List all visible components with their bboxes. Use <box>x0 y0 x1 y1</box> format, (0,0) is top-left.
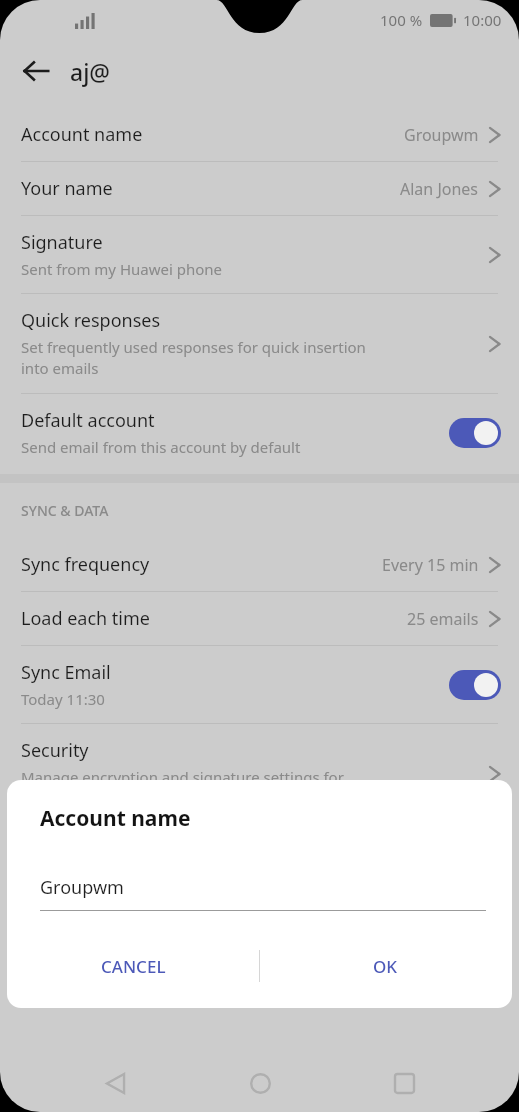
staticText: Groupwm <box>404 124 479 146</box>
button[interactable]: Toggle Default account <box>449 418 501 448</box>
staticText: Your name <box>21 176 113 201</box>
staticText: Set frequently used responses for quick … <box>21 337 366 379</box>
staticText: Sent from my Huawei phone <box>21 259 223 279</box>
staticText: aj@ <box>70 56 111 87</box>
staticText: Sync Email <box>21 660 111 685</box>
staticText: Security <box>21 738 89 763</box>
button[interactable]: Sync frequency <box>0 538 519 591</box>
staticText: Signature <box>21 230 103 255</box>
staticText: Manage encryption and signature settings… <box>21 767 344 809</box>
button[interactable]: Back <box>86 1054 144 1112</box>
button[interactable]: Sync Email <box>0 646 519 723</box>
staticText: 100 % <box>380 10 423 30</box>
button[interactable]: Recents <box>375 1054 433 1112</box>
button[interactable]: Quick responses <box>0 294 519 393</box>
button[interactable]: Signature <box>0 216 519 293</box>
button[interactable]: OK <box>259 934 512 998</box>
staticText: Account name <box>40 804 191 833</box>
button[interactable]: Default account <box>0 394 519 471</box>
staticText: Today 11:30 <box>21 689 105 709</box>
staticText: 25 emails <box>407 608 479 630</box>
staticText: Default account <box>21 408 155 433</box>
staticText: Groupwm <box>40 875 124 900</box>
staticText: Send email from this account by default <box>21 437 301 457</box>
staticText: Load each time <box>21 606 150 631</box>
staticText: Every 15 min <box>382 554 479 576</box>
staticText: Alan Jones <box>400 178 479 200</box>
button[interactable]: Account name <box>0 108 519 161</box>
staticText: Quick responses <box>21 308 161 333</box>
button[interactable]: Load each time <box>0 592 519 645</box>
staticText: 10:00 <box>463 10 502 30</box>
staticText: CANCEL <box>101 955 166 978</box>
button[interactable]: Toggle Sync Email <box>449 670 501 700</box>
button[interactable]: Home <box>231 1054 289 1112</box>
staticText: Account name <box>21 122 143 147</box>
button[interactable]: Your name <box>0 162 519 215</box>
button[interactable]: CANCEL <box>7 934 259 998</box>
button[interactable]: Back <box>10 45 62 97</box>
button[interactable]: Security <box>0 724 519 823</box>
staticText: OK <box>373 955 398 978</box>
staticText: SYNC & DATA <box>21 501 109 520</box>
staticText: Sync frequency <box>21 552 150 577</box>
